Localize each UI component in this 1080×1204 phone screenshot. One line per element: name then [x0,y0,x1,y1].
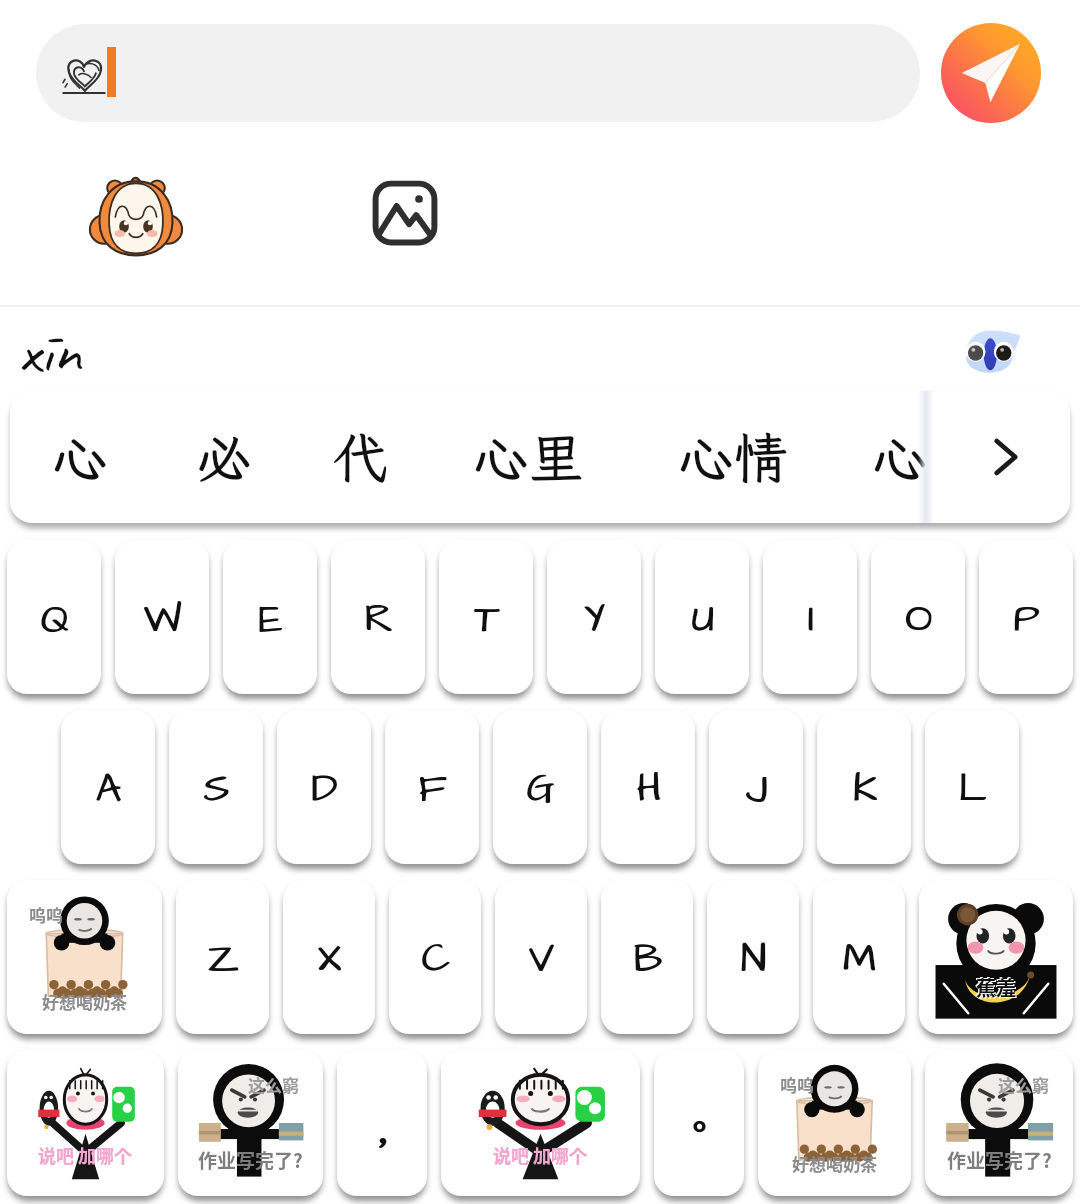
staticText: 说吧 加哪个 [493,1142,588,1168]
staticText: 心情 [678,421,789,493]
staticText: Z [208,932,240,988]
button[interactable]: L [925,710,1019,864]
button[interactable]: Sticker: 蕉羞 [919,880,1073,1034]
staticText: W [144,592,182,648]
button[interactable]: 心情 [653,391,813,523]
button[interactable]: Sticker: 好想喝奶茶 [758,1050,911,1196]
staticText: R [365,592,394,648]
button[interactable]: G [493,710,587,864]
button[interactable]: Photos [370,178,440,248]
staticText: 心 [52,421,108,493]
staticText: W [143,592,181,648]
staticText: 作业写完了? [198,1146,303,1174]
staticText: M [843,932,877,988]
button[interactable] [36,24,920,122]
staticText: 代 [332,421,388,493]
button[interactable]: J [709,710,803,864]
staticText: N [740,932,766,988]
button[interactable]: Sticker: 说吧加哪个 [441,1050,640,1196]
button[interactable]: I [763,540,857,694]
staticText: P [1013,592,1039,648]
staticText: 必 [196,421,252,493]
button[interactable]: Sticker: 作业写完了 [178,1050,323,1196]
button[interactable]: 必 [184,391,264,523]
staticText: 心里 [473,421,584,493]
button[interactable]: 心 [860,391,940,523]
staticText: J [746,762,768,818]
button[interactable]: S [169,710,263,864]
staticText: I [807,592,814,648]
button[interactable]: P [979,540,1073,694]
button[interactable]: D [277,710,371,864]
staticText: 心 [872,421,928,493]
button[interactable]: U [655,540,749,694]
button[interactable]: Sticker: 作业写完了 [925,1050,1073,1196]
button[interactable]: H [601,710,695,864]
staticText: Z [207,932,239,988]
button[interactable]: , [337,1050,427,1196]
button[interactable]: O [871,540,965,694]
staticText: 这么窮 [248,1072,299,1097]
staticText: 作业写完了? [947,1146,1052,1174]
button[interactable]: A [61,710,155,864]
staticText: D [312,762,338,818]
staticText: K [853,762,878,818]
button[interactable]: 心 [40,391,120,523]
staticText: V [528,932,554,988]
staticText: xīn [18,311,81,392]
staticText: 。 [679,1100,719,1153]
button[interactable]: B [601,880,693,1034]
button[interactable]: T [439,540,533,694]
button[interactable]: More candidates [942,391,1068,523]
staticText: B [634,932,663,988]
button[interactable]: M [813,880,905,1034]
staticText: X [318,932,342,988]
button[interactable]: E [223,540,317,694]
staticText: X [317,932,341,988]
staticText: 好想喝奶茶 [42,989,127,1014]
staticText: U [692,592,715,648]
staticText: V [529,932,555,988]
button[interactable]: N [707,880,799,1034]
button[interactable]: V [495,880,587,1034]
button[interactable]: Voice assistant [958,321,1022,385]
staticText: T [474,592,499,648]
staticText: S [204,762,230,818]
staticText: Q [41,592,70,648]
staticText: N [741,932,767,988]
staticText: S [203,762,229,818]
staticText: Y [583,592,605,648]
staticText: K [852,762,877,818]
button[interactable]: K [817,710,911,864]
staticText: 这么窮 [998,1072,1049,1097]
staticText: Y [584,592,606,648]
button[interactable]: 代 [320,391,400,523]
staticText: I [808,592,815,648]
button[interactable]: Stickers [88,167,184,263]
button[interactable]: Z [176,880,269,1034]
button[interactable]: Y [547,540,641,694]
button[interactable]: Send [941,23,1041,123]
staticText: 说吧 加哪个 [38,1142,133,1168]
button[interactable]: Q [7,540,101,694]
staticText: D [311,762,337,818]
button[interactable]: Sticker: 说吧加哪个 [7,1050,164,1196]
staticText: , [375,1096,392,1157]
staticText: B [633,932,662,988]
staticText: , [374,1096,391,1157]
staticText: M [842,932,876,988]
button[interactable]: F [385,710,479,864]
staticText: A [96,762,122,818]
button[interactable]: X [283,880,375,1034]
button[interactable]: 心里 [448,391,608,523]
staticText: A [95,762,121,818]
button[interactable]: W [115,540,209,694]
staticText: E [259,592,283,648]
button[interactable]: Sticker: 好想喝奶茶 [7,880,162,1034]
button[interactable]: R [331,540,425,694]
staticText: Q [40,592,69,648]
button[interactable]: C [389,880,481,1034]
staticText: L [958,762,986,818]
button[interactable]: 。 [654,1050,744,1196]
staticText: F [418,762,446,818]
